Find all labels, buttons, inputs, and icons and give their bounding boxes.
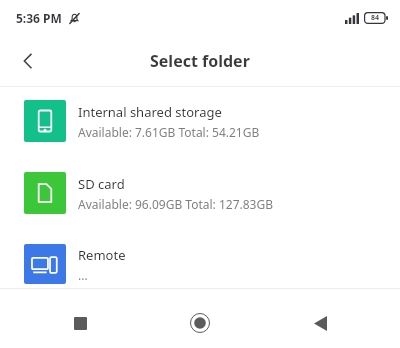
button[interactable]: Internal shared storage xyxy=(0,96,400,146)
staticText: SD card xyxy=(78,175,125,193)
button[interactable]: SD card xyxy=(0,168,400,218)
button[interactable]: Back xyxy=(8,41,48,81)
staticText: ... xyxy=(78,267,88,283)
button[interactable]: Recents xyxy=(60,303,100,343)
button[interactable]: Home xyxy=(180,303,220,343)
staticText: 84 xyxy=(371,13,380,23)
button[interactable]: Remote xyxy=(0,240,400,288)
staticText: Internal shared storage xyxy=(78,103,222,121)
staticText: 5:36 PM xyxy=(16,10,62,26)
button[interactable]: Back xyxy=(300,303,340,343)
staticText: Available: 96.09GB Total: 127.83GB xyxy=(78,196,273,212)
staticText: Available: 7.61GB Total: 54.21GB xyxy=(78,124,260,140)
staticText: Remote xyxy=(78,246,126,264)
staticText: Select folder xyxy=(150,50,250,72)
